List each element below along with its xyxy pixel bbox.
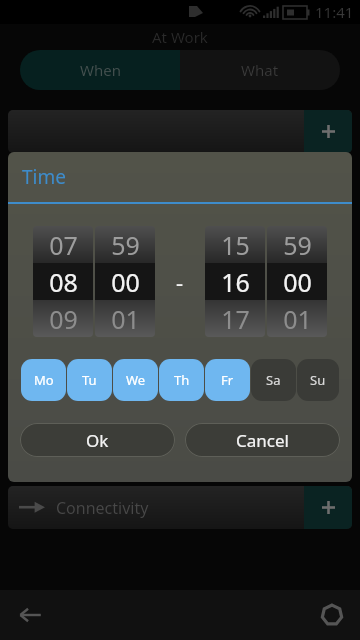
button[interactable]: We xyxy=(113,359,158,401)
button[interactable]: When xyxy=(20,50,180,90)
button[interactable]: 00 xyxy=(95,263,155,300)
button[interactable]: Back xyxy=(10,595,50,635)
button[interactable]: Mo xyxy=(21,359,66,401)
button[interactable]: 17 xyxy=(205,300,265,337)
staticText: 16 xyxy=(221,265,250,299)
staticText: What xyxy=(241,60,279,80)
button[interactable]: NFC xyxy=(8,415,352,458)
staticText: 11:41 xyxy=(315,2,354,22)
button[interactable]: Add xyxy=(304,415,352,458)
staticText: Time xyxy=(22,164,66,190)
staticText: 17 xyxy=(221,302,250,336)
button[interactable]: Add xyxy=(304,110,352,153)
button[interactable]: 09 xyxy=(33,300,93,337)
staticText: Sa xyxy=(266,371,281,389)
staticText: 15 xyxy=(221,228,250,262)
staticText: 08 xyxy=(49,265,78,299)
staticText: Tu xyxy=(82,371,97,389)
staticText: When xyxy=(80,60,121,80)
staticText: We xyxy=(126,371,146,389)
staticText: Th xyxy=(174,371,190,389)
button[interactable]: Tu xyxy=(67,359,112,401)
button[interactable]: 01 xyxy=(95,300,155,337)
button[interactable]: Settings xyxy=(312,595,352,635)
button[interactable]: Ok xyxy=(20,423,175,457)
button[interactable]: 16 xyxy=(205,263,265,300)
button[interactable]: Sa xyxy=(251,359,296,401)
staticText: Mo xyxy=(34,371,54,389)
button[interactable]: Fr xyxy=(205,359,250,401)
staticText: Fr xyxy=(221,371,234,389)
button[interactable]: 59 xyxy=(267,226,327,263)
staticText: 00 xyxy=(283,265,312,299)
button[interactable]: What xyxy=(180,50,340,90)
button[interactable]: Su xyxy=(297,359,339,401)
staticText: 59 xyxy=(283,228,312,262)
staticText: Connectivity xyxy=(56,497,149,519)
button[interactable]: 01 xyxy=(267,300,327,337)
staticText: 00 xyxy=(111,265,140,299)
staticText: 59 xyxy=(111,228,140,262)
staticText: At Work xyxy=(152,27,208,47)
button[interactable]: 07 xyxy=(33,226,93,263)
button[interactable]: Add xyxy=(8,110,352,153)
staticText: 01 xyxy=(283,302,312,336)
staticText: Ok xyxy=(86,429,109,452)
staticText: 09 xyxy=(49,302,78,336)
button[interactable]: Add xyxy=(304,486,352,529)
button[interactable]: 00 xyxy=(267,263,327,300)
staticText: 01 xyxy=(111,302,140,336)
button[interactable]: 59 xyxy=(95,226,155,263)
staticText: Su xyxy=(310,371,326,389)
staticText: - xyxy=(176,267,184,297)
staticText: 07 xyxy=(49,228,78,262)
button[interactable]: 08 xyxy=(33,263,93,300)
button[interactable]: Connectivity xyxy=(8,486,352,529)
button[interactable]: Th xyxy=(159,359,204,401)
button[interactable]: Cancel xyxy=(185,423,340,457)
staticText: Cancel xyxy=(236,429,289,452)
button[interactable]: 15 xyxy=(205,226,265,263)
